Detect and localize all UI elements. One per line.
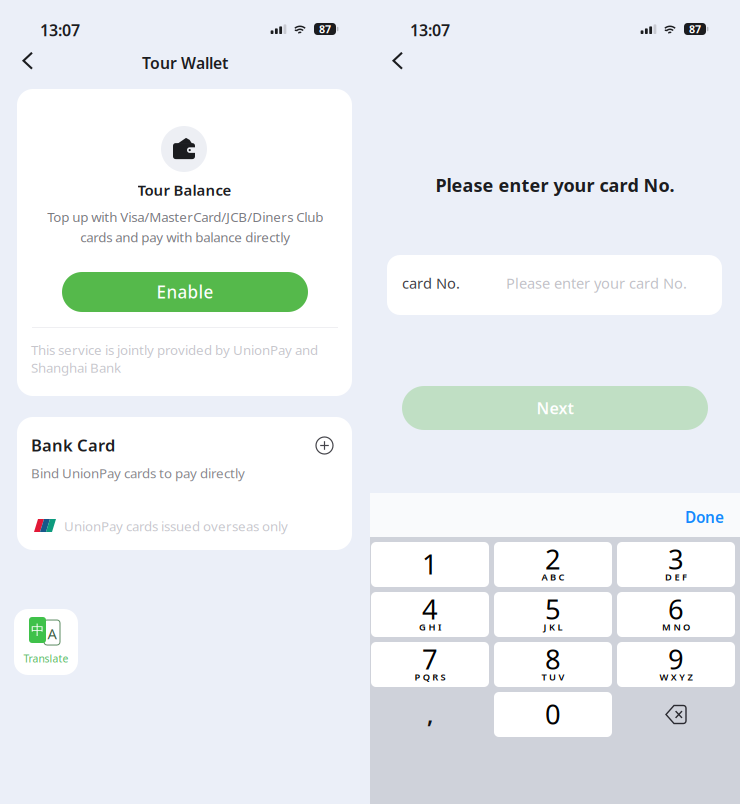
staticText: ,	[427, 699, 433, 729]
staticText: This service is jointly provided by Unio…	[31, 341, 318, 376]
button[interactable]: Add bank card	[316, 437, 333, 454]
staticText: S	[441, 671, 446, 683]
button[interactable]: Next	[402, 386, 708, 430]
button[interactable]: 1	[371, 542, 489, 587]
staticText: Bank Card	[31, 434, 115, 456]
button[interactable]: ,	[371, 692, 489, 737]
button[interactable]: Delete	[617, 692, 735, 737]
staticText: Enable	[156, 280, 213, 304]
staticText: 中	[31, 622, 44, 638]
button[interactable]: 8	[494, 642, 612, 687]
staticText: 7	[422, 640, 438, 678]
staticText: 8	[545, 640, 561, 678]
staticText: I	[438, 621, 441, 633]
button[interactable]: 0	[494, 692, 612, 737]
button[interactable]: Enable	[62, 272, 308, 312]
staticText: Top up with Visa/MasterCard/JCB/Diners C…	[47, 208, 323, 246]
staticText: Please enter your card No.	[506, 273, 687, 293]
staticText: Q	[423, 671, 430, 683]
button[interactable]: Back	[378, 47, 418, 75]
staticText: Please enter your card No.	[435, 173, 674, 197]
staticText: D	[665, 571, 672, 583]
staticText: W	[659, 671, 668, 683]
staticText: UnionPay cards issued overseas only	[64, 517, 288, 535]
staticText: X	[671, 671, 677, 683]
button[interactable]: 4	[371, 592, 489, 637]
button[interactable]: Back	[8, 47, 48, 75]
staticText: A	[47, 623, 56, 643]
staticText: Done	[685, 507, 724, 527]
button[interactable]: A	[14, 609, 78, 675]
staticText: K	[549, 621, 555, 633]
staticText: Tour Wallet	[142, 52, 228, 74]
staticText: T	[542, 671, 547, 683]
staticText: 5	[545, 590, 561, 628]
staticText: card No.	[402, 273, 460, 293]
staticText: Tour Balance	[137, 180, 231, 200]
staticText: 0	[545, 695, 561, 733]
button[interactable]: 3	[617, 542, 735, 587]
staticText: N	[673, 621, 680, 633]
button[interactable]: 9	[617, 642, 735, 687]
staticText: 4	[422, 590, 438, 628]
staticText: E	[674, 571, 679, 583]
staticText: V	[558, 671, 564, 683]
staticText: 9	[668, 640, 684, 678]
staticText: R	[432, 671, 438, 683]
button[interactable]: 7	[371, 642, 489, 687]
staticText: P	[414, 671, 420, 683]
staticText: Translate	[23, 651, 68, 666]
staticText: A	[542, 571, 548, 583]
staticText: 87	[689, 22, 701, 36]
staticText: 87	[319, 22, 331, 36]
staticText: 1	[422, 545, 438, 583]
staticText: Y	[679, 671, 685, 683]
staticText: H	[428, 621, 435, 633]
staticText: J	[544, 621, 547, 633]
button[interactable]: 5	[494, 592, 612, 637]
staticText: G	[419, 621, 426, 633]
staticText: O	[683, 621, 690, 633]
staticText: L	[557, 621, 562, 633]
staticText: 2	[545, 540, 561, 578]
staticText: C	[558, 571, 564, 583]
staticText: 13:07	[410, 19, 450, 41]
staticText: M	[662, 621, 671, 633]
staticText: Z	[688, 671, 693, 683]
staticText: 6	[668, 590, 684, 628]
staticText: Next	[536, 397, 573, 419]
button[interactable]: 2	[494, 542, 612, 587]
button[interactable]: Done	[654, 493, 740, 539]
staticText: B	[550, 571, 556, 583]
staticText: Bind UnionPay cards to pay directly	[31, 464, 245, 482]
staticText: 13:07	[40, 19, 80, 41]
staticText: 3	[668, 540, 684, 578]
button[interactable]: 6	[617, 592, 735, 637]
staticText: F	[682, 571, 687, 583]
staticText: U	[549, 671, 556, 683]
